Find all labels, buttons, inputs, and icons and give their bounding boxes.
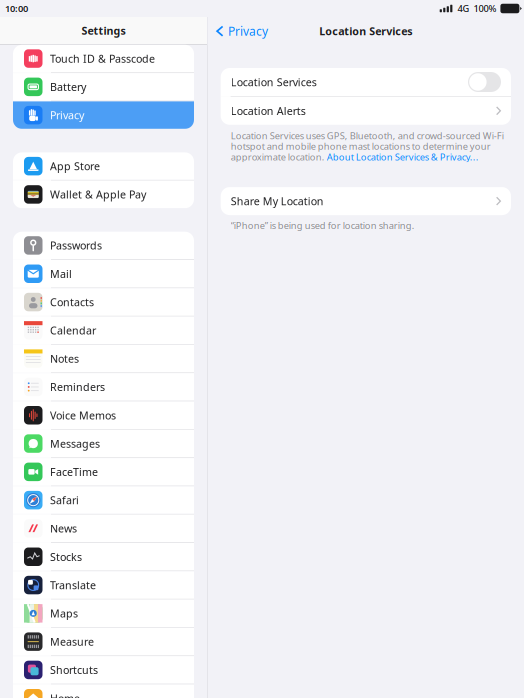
button[interactable]: Contacts xyxy=(13,288,194,316)
button[interactable]: Touch ID & Passcode xyxy=(13,45,194,72)
staticText: App Store xyxy=(50,159,100,173)
staticText: 4G xyxy=(457,2,469,15)
button[interactable]: Messages xyxy=(13,430,194,457)
staticText: Location Alerts xyxy=(231,104,306,118)
button[interactable]: Battery xyxy=(13,73,194,101)
button[interactable]: Calendar xyxy=(13,317,194,344)
staticText: Touch ID & Passcode xyxy=(50,51,155,66)
staticText: Safari xyxy=(50,493,79,507)
staticText: Settings xyxy=(81,23,125,38)
button[interactable]: Measure xyxy=(13,628,194,655)
button[interactable]: Location Services xyxy=(221,68,511,96)
button[interactable]: Shortcuts xyxy=(13,656,194,684)
staticText: Location Services xyxy=(231,75,317,89)
button[interactable]: Privacy xyxy=(13,101,194,129)
staticText: 10:00 xyxy=(5,2,28,15)
staticText: About Location Services & Privacy... xyxy=(327,151,479,163)
staticText: Translate xyxy=(50,578,96,592)
staticText: Privacy xyxy=(228,23,268,39)
button[interactable]: Maps xyxy=(13,600,194,627)
button[interactable]: News xyxy=(13,515,194,542)
button[interactable]: Passwords xyxy=(13,232,194,259)
button[interactable]: Translate xyxy=(13,571,194,599)
staticText: Location Services xyxy=(319,24,412,38)
staticText: Battery xyxy=(50,80,86,94)
button[interactable]: Notes xyxy=(13,345,194,372)
button[interactable]: FaceTime xyxy=(13,458,194,486)
button[interactable]: Stocks xyxy=(13,543,194,570)
button[interactable]: Mail xyxy=(13,260,194,287)
staticText: Contacts xyxy=(50,295,94,309)
staticText: Voice Memos xyxy=(50,408,116,422)
staticText: Privacy xyxy=(50,108,84,122)
staticText: Wallet & Apple Pay xyxy=(50,187,146,202)
staticText: Messages xyxy=(50,436,100,451)
staticText: hotspot and mobile phone mast locations … xyxy=(231,140,491,152)
button[interactable]: About Location Services & Privacy... xyxy=(327,151,479,163)
button[interactable]: Safari xyxy=(13,486,194,514)
staticText: Stocks xyxy=(50,550,82,564)
staticText: Calendar xyxy=(50,323,96,337)
staticText: News xyxy=(50,521,77,536)
button[interactable]: Wallet & Apple Pay xyxy=(13,181,194,208)
staticText: Passwords xyxy=(50,238,102,253)
button[interactable]: Location Alerts xyxy=(221,97,511,125)
staticText: Location Services uses GPS, Bluetooth, a… xyxy=(231,129,504,142)
button[interactable]: App Store xyxy=(13,152,194,180)
staticText: Notes xyxy=(50,352,79,366)
staticText: Home xyxy=(50,691,80,698)
staticText: Maps xyxy=(50,606,78,620)
button[interactable]: Voice Memos xyxy=(13,401,194,429)
staticText: FaceTime xyxy=(50,465,98,479)
button[interactable]: Home xyxy=(13,684,194,698)
staticText: approximate location. xyxy=(231,151,327,163)
button[interactable]: Reminders xyxy=(13,373,194,401)
staticText: “iPhone” is being used for location shar… xyxy=(231,219,415,231)
staticText: Reminders xyxy=(50,380,105,394)
staticText: Shortcuts xyxy=(50,663,98,677)
button[interactable]: Privacy xyxy=(208,19,268,43)
staticText: 100% xyxy=(473,2,496,15)
staticText: Share My Location xyxy=(231,194,324,208)
button[interactable]: Share My Location xyxy=(221,187,511,215)
staticText: Mail xyxy=(50,267,72,281)
staticText: Measure xyxy=(50,635,94,649)
